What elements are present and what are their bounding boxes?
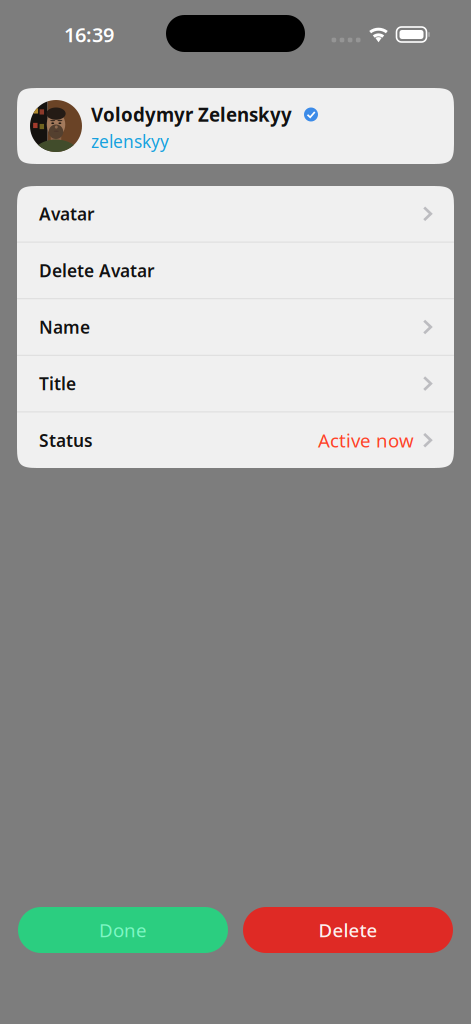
staticText: Title <box>39 372 76 395</box>
button[interactable]: Done <box>18 907 228 953</box>
staticText: Done <box>99 918 147 942</box>
staticText: Avatar <box>39 202 95 225</box>
button[interactable]: Status <box>17 412 454 468</box>
button[interactable]: Delete Avatar <box>17 243 454 298</box>
button[interactable]: Title <box>17 356 454 411</box>
button[interactable]: Delete <box>243 907 453 953</box>
staticText: Status <box>39 429 93 452</box>
staticText: Volodymyr Zelenskyy <box>91 102 292 127</box>
staticText: Delete Avatar <box>39 259 155 282</box>
staticText: Active now <box>318 428 414 453</box>
button[interactable]: Volodymyr Zelenskyy <box>17 88 454 164</box>
button[interactable]: Avatar <box>17 186 454 242</box>
staticText: Name <box>39 315 90 338</box>
button[interactable]: Name <box>17 299 454 355</box>
staticText: Delete <box>318 918 377 942</box>
staticText: 16:39 <box>64 21 114 48</box>
staticText: zelenskyy <box>91 130 169 153</box>
